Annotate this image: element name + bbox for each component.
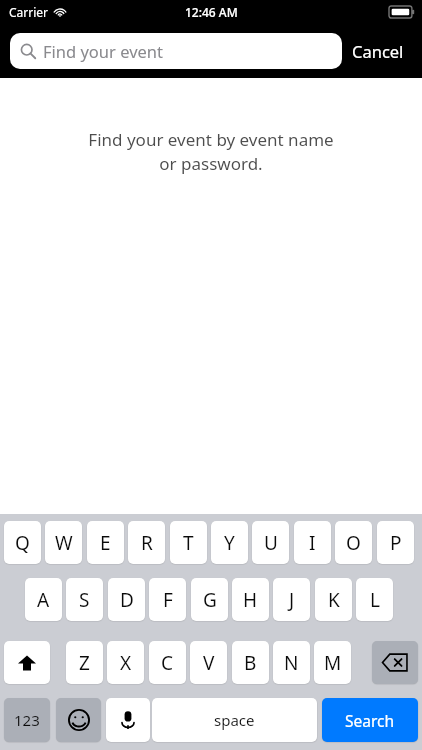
staticText: Cancel [352,40,404,62]
staticText: Q [15,530,30,556]
button[interactable]: E [87,521,124,564]
button[interactable]: A [25,578,62,621]
staticText: X [120,650,132,676]
button[interactable]: M [314,641,351,684]
button[interactable]: O [335,521,372,564]
button[interactable]: K [315,578,352,621]
button[interactable]: U [252,521,289,564]
staticText: E [100,530,111,556]
staticText: R [141,530,153,556]
button[interactable]: Space [152,698,317,742]
button[interactable]: Search [322,698,418,742]
staticText: F [163,587,173,613]
button[interactable]: Numbers [4,698,50,742]
button[interactable]: Backspace [372,641,418,684]
staticText: O [346,530,361,556]
button[interactable]: H [232,578,269,621]
staticText: H [243,587,258,613]
staticText: T [183,530,194,556]
staticText: S [79,587,90,613]
button[interactable]: Shift [4,641,50,684]
staticText: L [370,587,380,613]
button[interactable]: B [232,641,269,684]
button[interactable]: Dictation [106,698,150,742]
button[interactable]: P [377,521,414,564]
button[interactable]: L [356,578,393,621]
staticText: Search [345,710,395,731]
staticText: 12:46 AM [185,4,238,20]
staticText: N [284,650,299,676]
button[interactable]: V [190,641,227,684]
button[interactable]: Y [211,521,248,564]
staticText: Find your event by event name or passwor… [88,128,334,175]
staticText: G [203,587,217,613]
staticText: Y [224,530,235,556]
staticText: M [324,650,342,676]
staticText: W [55,530,73,556]
button[interactable]: N [273,641,310,684]
button[interactable]: Cancel [342,32,414,70]
button[interactable]: Emoji [56,698,101,742]
staticText: P [390,530,402,556]
staticText: Find your event [43,40,163,62]
staticText: K [328,587,340,613]
button[interactable]: I [294,521,331,564]
staticText: B [244,650,257,676]
button[interactable]: Z [66,641,103,684]
staticText: Z [79,650,90,676]
staticText: I [309,530,316,556]
staticText: space [214,710,255,730]
button[interactable]: C [149,641,186,684]
staticText: U [264,530,278,556]
button[interactable]: Find your event [10,33,342,69]
button[interactable]: G [191,578,228,621]
staticText: Carrier [9,4,49,20]
button[interactable]: R [128,521,165,564]
button[interactable]: T [170,521,207,564]
staticText: C [161,650,174,676]
button[interactable]: X [107,641,144,684]
staticText: D [120,587,134,613]
staticText: A [37,587,50,613]
button[interactable]: F [149,578,186,621]
button[interactable]: D [108,578,145,621]
button[interactable]: W [45,521,82,564]
staticText: 123 [14,710,40,730]
button[interactable]: Q [4,521,41,564]
button[interactable]: S [66,578,103,621]
staticText: V [203,650,215,676]
staticText: J [289,587,295,613]
button[interactable]: J [273,578,310,621]
